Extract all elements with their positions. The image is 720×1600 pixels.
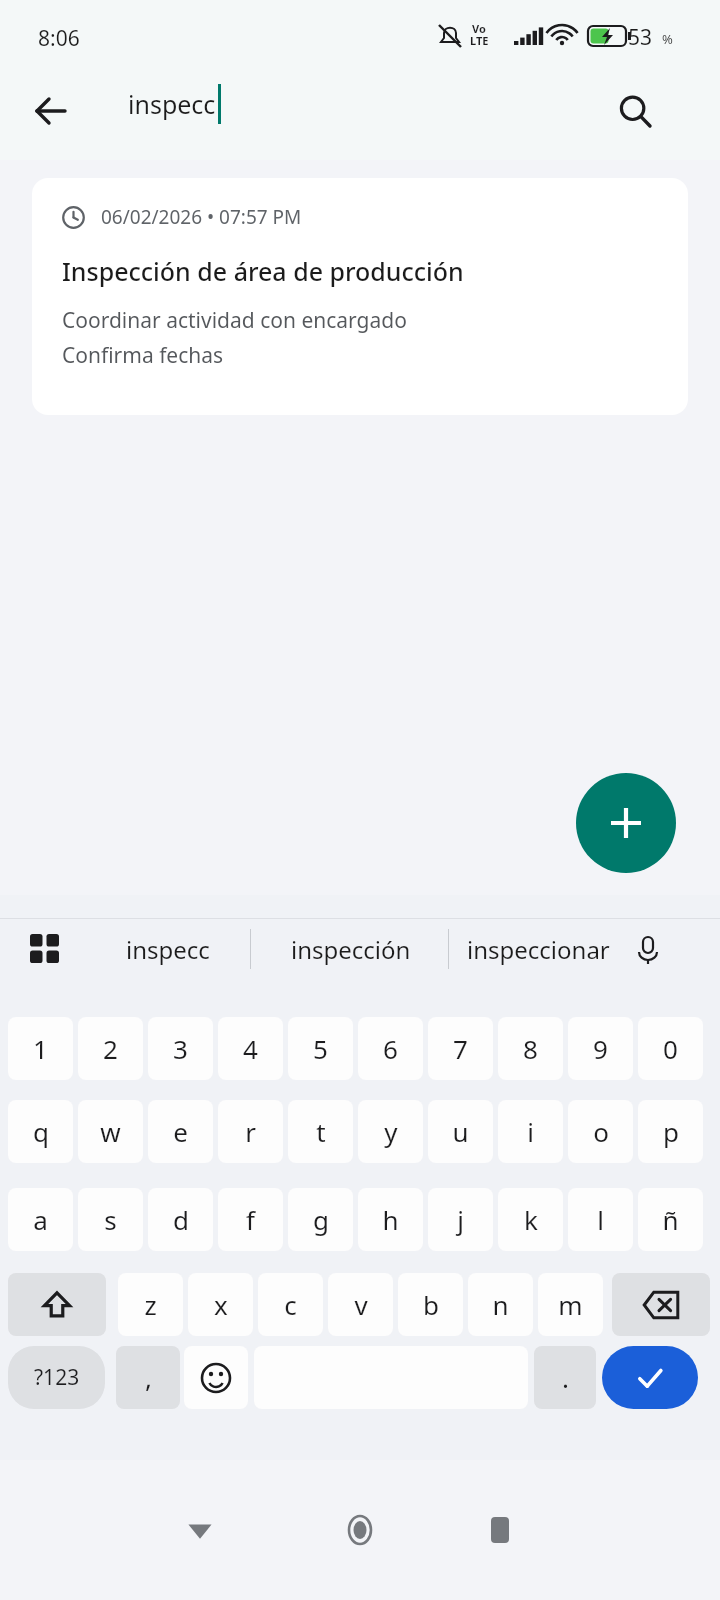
staticText: a [33, 1202, 48, 1237]
button[interactable]: 6 [358, 1017, 423, 1080]
button[interactable]: e [148, 1100, 213, 1163]
button[interactable]: Emoji [184, 1346, 248, 1409]
staticText: 1 [33, 1031, 48, 1066]
button[interactable]: p [638, 1100, 703, 1163]
button[interactable]: i [498, 1100, 563, 1163]
staticText: f [246, 1202, 255, 1237]
staticText: 3 [173, 1031, 188, 1066]
staticText: h [382, 1202, 399, 1237]
button[interactable]: inspección [262, 917, 440, 981]
button[interactable]: 06/02/2026 • 07:57 PM [32, 178, 688, 415]
button[interactable]: Home [320, 1490, 400, 1570]
button[interactable]: Recents [460, 1490, 540, 1570]
staticText: x [214, 1287, 228, 1322]
button[interactable]: 3 [148, 1017, 213, 1080]
staticText: b [423, 1287, 439, 1322]
staticText: inspecc [126, 933, 210, 966]
button[interactable]: a [8, 1188, 73, 1251]
staticText: d [173, 1202, 189, 1237]
staticText: % [662, 30, 673, 48]
staticText: l [597, 1202, 604, 1237]
button[interactable]: z [118, 1273, 183, 1336]
button[interactable]: c [258, 1273, 323, 1336]
staticText: t [316, 1114, 326, 1149]
staticText: 7 [453, 1031, 468, 1066]
button[interactable]: d [148, 1188, 213, 1251]
button[interactable]: inspecc [100, 917, 235, 981]
staticText: ?123 [34, 1363, 80, 1392]
button[interactable]: n [468, 1273, 533, 1336]
staticText: LTE [470, 33, 489, 48]
staticText: 4 [243, 1031, 258, 1066]
staticText: 53 [628, 23, 653, 52]
button[interactable]: s [78, 1188, 143, 1251]
staticText: Coordinar actividad con encargado [62, 306, 407, 335]
button[interactable]: k [498, 1188, 563, 1251]
staticText: 8:06 [38, 24, 80, 53]
staticText: z [144, 1287, 157, 1322]
staticText: c [284, 1287, 297, 1322]
button[interactable]: h [358, 1188, 423, 1251]
staticText: q [33, 1114, 49, 1149]
staticText: inspecc [128, 87, 216, 121]
button[interactable]: g [288, 1188, 353, 1251]
button[interactable]: r [218, 1100, 283, 1163]
staticText: . [562, 1360, 569, 1395]
button[interactable]: 4 [218, 1017, 283, 1080]
button[interactable]: Voice input [620, 922, 676, 978]
button[interactable]: 9 [568, 1017, 633, 1080]
button[interactable]: Back [160, 1490, 240, 1570]
button[interactable]: Add task [576, 773, 676, 873]
button[interactable]: x [188, 1273, 253, 1336]
button[interactable]: q [8, 1100, 73, 1163]
button[interactable]: m [538, 1273, 603, 1336]
button[interactable]: inspeccionar [456, 917, 620, 981]
staticText: i [527, 1114, 534, 1149]
button[interactable]: f [218, 1188, 283, 1251]
button[interactable]: ?123 [8, 1346, 105, 1409]
button[interactable]: Shift [8, 1273, 106, 1336]
button[interactable]: l [568, 1188, 633, 1251]
staticText: j [457, 1202, 464, 1237]
button[interactable]: . [534, 1346, 596, 1409]
button[interactable]: 1 [8, 1017, 73, 1080]
button[interactable]: o [568, 1100, 633, 1163]
button[interactable]: Backspace [612, 1273, 710, 1336]
staticText: o [593, 1114, 609, 1149]
staticText: s [104, 1202, 117, 1237]
staticText: r [245, 1114, 256, 1149]
staticText: Inspección de área de producción [62, 254, 464, 288]
staticText: v [354, 1287, 368, 1322]
button[interactable]: Search [600, 76, 670, 146]
staticText: inspección [291, 933, 411, 966]
button[interactable]: v [328, 1273, 393, 1336]
staticText: 0 [663, 1031, 678, 1066]
staticText: g [313, 1202, 329, 1237]
staticText: n [492, 1287, 509, 1322]
button[interactable]: ñ [638, 1188, 703, 1251]
button[interactable]: t [288, 1100, 353, 1163]
staticText: ñ [662, 1202, 679, 1237]
staticText: u [452, 1114, 469, 1149]
button[interactable]: Keyboard options [18, 922, 72, 976]
button[interactable]: Back [16, 76, 86, 146]
button[interactable]: 8 [498, 1017, 563, 1080]
button[interactable]: w [78, 1100, 143, 1163]
staticText: 06/02/2026 • 07:57 PM [101, 204, 302, 230]
button[interactable]: 5 [288, 1017, 353, 1080]
button[interactable]: 0 [638, 1017, 703, 1080]
staticText: w [100, 1114, 121, 1149]
staticText: 9 [593, 1031, 608, 1066]
button[interactable]: j [428, 1188, 493, 1251]
button[interactable]: Enter [602, 1346, 698, 1409]
button[interactable]: y [358, 1100, 423, 1163]
button[interactable]: 2 [78, 1017, 143, 1080]
staticText: , [145, 1360, 152, 1395]
staticText: Confirma fechas [62, 341, 224, 370]
button[interactable]: 7 [428, 1017, 493, 1080]
staticText: k [524, 1202, 538, 1237]
button[interactable]: , [116, 1346, 180, 1409]
button[interactable]: b [398, 1273, 463, 1336]
button[interactable]: u [428, 1100, 493, 1163]
